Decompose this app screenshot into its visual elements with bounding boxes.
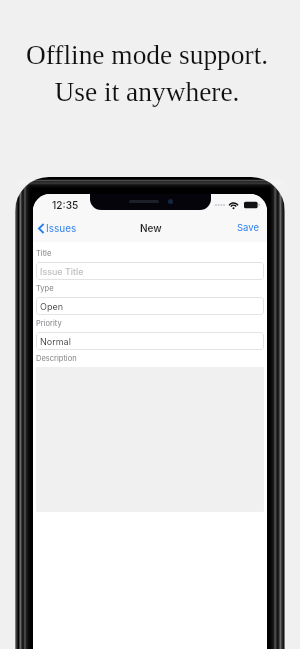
button[interactable]: Issues [33,218,85,238]
staticText: New [140,222,162,234]
staticText: Normal [40,336,71,347]
button[interactable]: Open [36,297,264,315]
staticText: 12:35 [52,199,79,211]
staticText: Issue Title [40,266,84,277]
button[interactable]: Issue Title [36,262,264,280]
staticText: Offline mode support. Use it anywhere. [0,40,297,107]
staticText: Title [36,249,52,258]
staticText: Priority [36,319,62,328]
staticText: Type [36,284,54,293]
button[interactable]: Normal [36,332,264,350]
staticText: Description [36,354,77,363]
staticText: Open [40,301,63,312]
button[interactable]: Save [229,218,267,237]
staticText: Issues [46,222,77,234]
